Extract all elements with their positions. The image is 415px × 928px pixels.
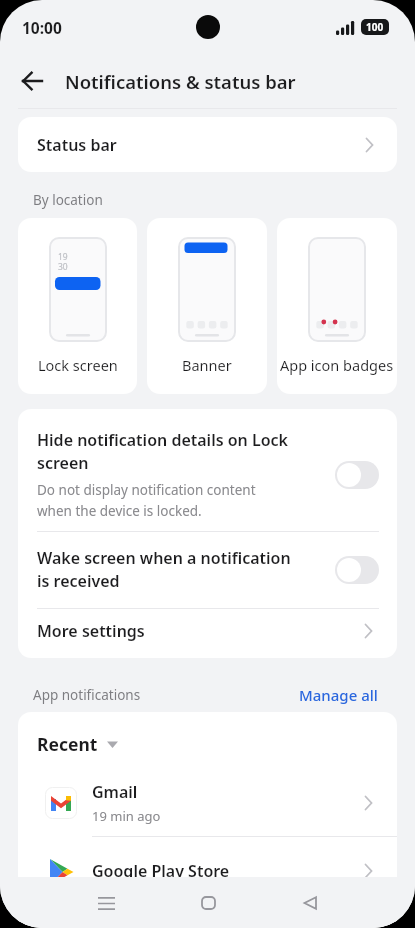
staticText: Gmail xyxy=(92,781,138,803)
staticText: More settings xyxy=(37,620,364,642)
staticText: Notifications & status bar xyxy=(65,69,296,94)
staticText: Wake screen when a notification is recei… xyxy=(37,547,325,592)
button[interactable] xyxy=(0,54,54,108)
button[interactable]: App icon badges xyxy=(277,218,397,394)
button[interactable]: Banner xyxy=(147,218,267,394)
staticText: Hide notification details on Lock screen xyxy=(37,429,289,474)
button[interactable] xyxy=(335,461,379,489)
staticText: App icon badges xyxy=(280,355,394,375)
staticText: Manage all xyxy=(299,685,378,705)
button[interactable]: Wake screen when a notification is recei… xyxy=(18,532,397,608)
staticText: By location xyxy=(33,191,103,209)
button[interactable]: More settings xyxy=(18,609,397,658)
button[interactable] xyxy=(290,883,330,923)
staticText: Lock screen xyxy=(38,355,118,375)
staticText: 100 xyxy=(366,20,384,34)
staticText: 10:00 xyxy=(22,17,62,38)
button[interactable]: Status bar xyxy=(18,117,397,172)
staticText: 19 30 xyxy=(58,251,68,273)
staticText: Recent xyxy=(37,732,98,756)
button[interactable]: Hide notification details on Lock screen xyxy=(18,409,397,531)
button[interactable]: Google Play Store xyxy=(18,837,397,904)
button[interactable] xyxy=(188,883,228,923)
button[interactable]: Gmail xyxy=(18,769,397,836)
button[interactable]: Recent xyxy=(18,712,397,756)
staticText: 19 min ago xyxy=(92,807,161,825)
staticText: App notifications xyxy=(33,686,141,704)
staticText: Do not display notification content when… xyxy=(37,481,256,520)
staticText: Status bar xyxy=(37,134,117,156)
button[interactable]: Manage all xyxy=(299,685,378,705)
button[interactable]: 19 30 xyxy=(18,218,137,394)
staticText: Google Play Store xyxy=(92,860,230,882)
button[interactable] xyxy=(86,883,126,923)
staticText: Banner xyxy=(182,355,232,375)
button[interactable] xyxy=(335,556,379,584)
